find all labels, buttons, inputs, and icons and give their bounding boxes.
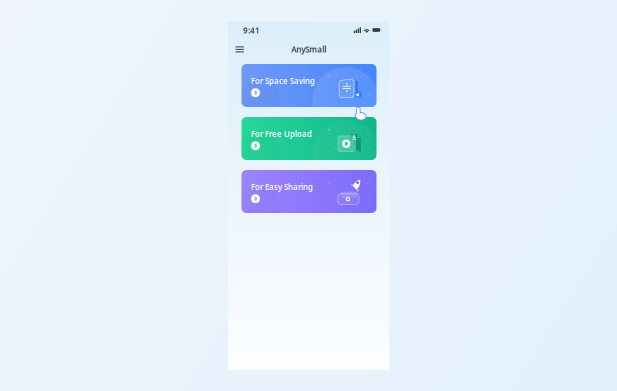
staticText: For Easy Sharing xyxy=(251,181,313,192)
staticText: For Space Saving xyxy=(251,75,315,86)
staticText: For Free Upload xyxy=(251,128,312,139)
button[interactable]: For Easy Sharing xyxy=(241,170,376,213)
staticText: AnySmall xyxy=(291,44,326,55)
button[interactable]: For Free Upload xyxy=(241,117,376,160)
staticText: 9:41 xyxy=(243,25,260,36)
button[interactable]: Menu xyxy=(235,45,244,54)
button[interactable]: For Space Saving xyxy=(241,64,376,107)
